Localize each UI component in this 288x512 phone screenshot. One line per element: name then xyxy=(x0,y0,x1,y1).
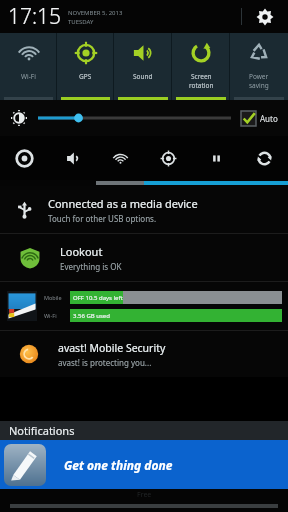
staticText: Wi-Fi xyxy=(21,72,36,81)
staticText: TUESDAY xyxy=(68,18,94,26)
staticText: Lookout xyxy=(60,244,103,259)
staticText: NOVEMBER 5, 2013 xyxy=(68,9,123,17)
button[interactable]: Sync xyxy=(240,136,288,180)
staticText: Sound xyxy=(133,72,153,81)
staticText: saving xyxy=(249,81,269,90)
staticText: Free xyxy=(137,490,152,500)
button[interactable]: Brightness xyxy=(8,107,30,129)
staticText: Wi-Fi xyxy=(44,312,57,319)
button[interactable]: Brightness slider xyxy=(38,107,231,129)
staticText: Auto xyxy=(260,113,278,124)
button[interactable]: Mobile xyxy=(0,282,288,330)
staticText: Screen xyxy=(191,72,212,81)
staticText: Power xyxy=(249,72,269,81)
button[interactable]: Sound xyxy=(114,33,172,100)
button[interactable]: Screen rotation xyxy=(172,33,230,100)
staticText: Notifications xyxy=(9,423,75,438)
staticText: avast! Mobile Security xyxy=(58,341,166,355)
staticText: OFF 10.5 days left xyxy=(73,294,123,302)
staticText: avast! is protecting you... xyxy=(58,357,152,368)
button[interactable]: Connected as a media device xyxy=(0,186,288,233)
staticText: 17:15 xyxy=(8,2,62,31)
button[interactable]: Auto xyxy=(239,111,280,126)
button[interactable]: Wi-Fi xyxy=(0,33,57,100)
button[interactable]: Sound xyxy=(48,136,96,180)
button[interactable]: Pause xyxy=(192,136,240,180)
button[interactable]: Settings xyxy=(0,136,48,180)
button[interactable]: Settings xyxy=(252,4,278,30)
button[interactable]: GPS xyxy=(144,136,192,180)
staticText: Connected as a media device xyxy=(48,196,198,211)
button[interactable]: Wi-Fi xyxy=(96,136,144,180)
button[interactable]: GPS xyxy=(57,33,114,100)
button[interactable]: avast! Mobile Security xyxy=(0,331,288,377)
staticText: 3.56 GB used xyxy=(73,312,110,320)
staticText: Touch for other USB options. xyxy=(48,213,157,224)
button[interactable]: Get one thing done xyxy=(0,440,288,489)
staticText: rotation xyxy=(189,81,214,90)
staticText: Mobile xyxy=(44,294,62,301)
staticText: GPS xyxy=(79,72,92,81)
staticText: Everything is OK xyxy=(60,261,122,272)
button[interactable]: Lookout xyxy=(0,234,288,281)
button[interactable]: Power saving xyxy=(230,33,288,100)
staticText: Get one thing done xyxy=(64,457,173,473)
